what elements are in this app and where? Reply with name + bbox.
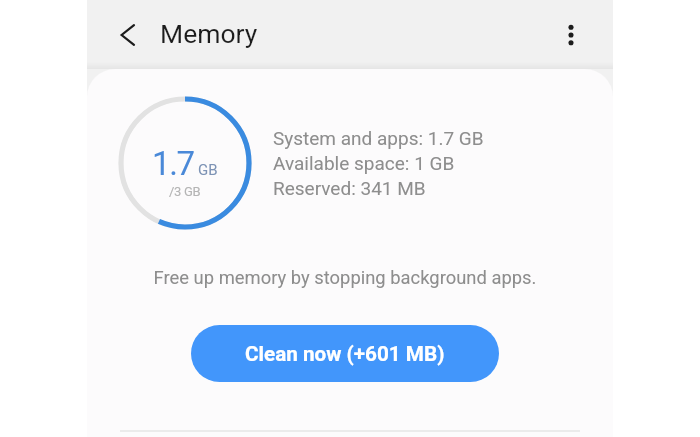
staticText: Free up memory by stopping background ap… [87, 267, 608, 289]
staticText: Memory [160, 18, 258, 49]
button[interactable]: Clean now (+601 MB) [191, 325, 499, 382]
staticText: Available space: 1 GB [273, 152, 455, 174]
button[interactable]: More options [549, 13, 593, 57]
staticText: /3 GB [169, 184, 201, 199]
staticText: System and apps: 1.7 GB [273, 127, 484, 149]
staticText: Reserved: 341 MB [273, 177, 426, 199]
staticText: GB [198, 161, 218, 179]
staticText: 1.7 [152, 144, 194, 183]
staticText: Clean now (+601 MB) [245, 342, 445, 366]
button[interactable]: Back [106, 13, 150, 57]
